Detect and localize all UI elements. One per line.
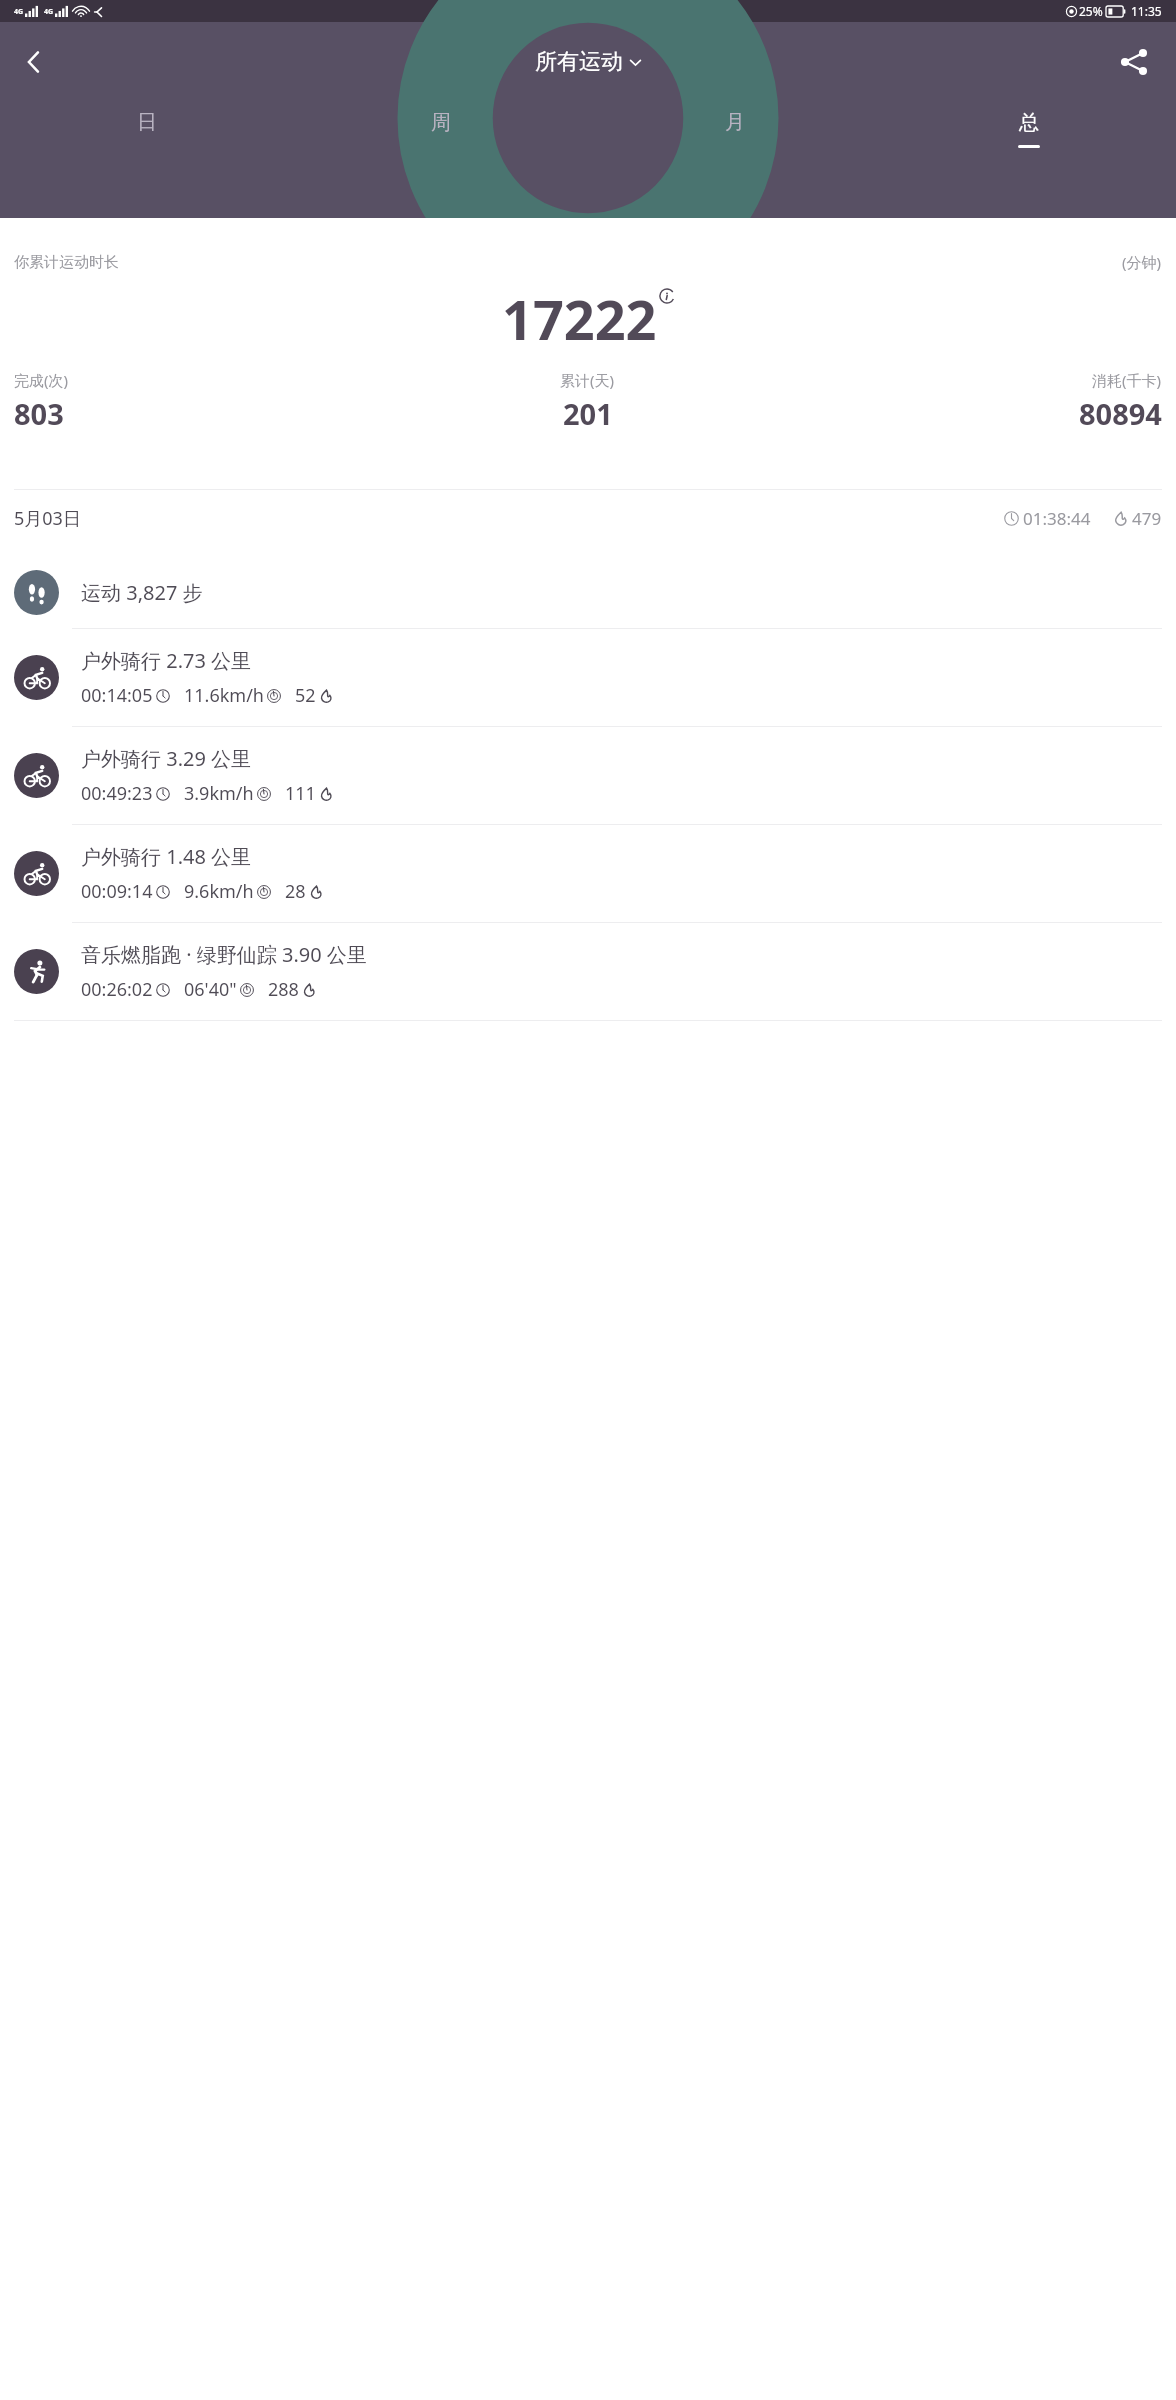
button[interactable]: 户外骑行 2.73 公里: [0, 629, 1176, 726]
button[interactable]: Back: [6, 34, 62, 90]
button[interactable]: 所有运动: [525, 42, 652, 82]
staticText: 00:49:23: [81, 781, 153, 806]
staticText: 288: [268, 977, 299, 1002]
staticText: 音乐燃脂跑 · 绿野仙踪 3.90 公里: [81, 941, 367, 968]
staticText: (分钟): [1122, 252, 1162, 272]
staticText: 日: [137, 110, 157, 135]
button[interactable]: 累计(天): [396, 370, 779, 433]
staticText: 80894: [1079, 394, 1162, 433]
button[interactable]: 周: [294, 102, 588, 162]
button[interactable]: 音乐燃脂跑 · 绿野仙踪 3.90 公里: [0, 923, 1176, 1020]
staticText: 所有运动: [535, 48, 623, 76]
staticText: 4G: [14, 7, 24, 17]
staticText: 11.6km/h: [184, 683, 264, 708]
staticText: 11:35: [1131, 3, 1162, 19]
staticText: 17222: [502, 282, 657, 356]
button[interactable]: 户外骑行 1.48 公里: [0, 825, 1176, 922]
staticText: 消耗(千卡): [1092, 370, 1162, 390]
button[interactable]: 户外骑行 3.29 公里: [0, 727, 1176, 824]
staticText: 户外骑行 1.48 公里: [81, 843, 252, 870]
staticText: 201: [563, 394, 613, 433]
staticText: 户外骑行 3.29 公里: [81, 745, 252, 772]
staticText: 111: [285, 781, 316, 806]
staticText: 01:38:44: [1023, 507, 1091, 530]
staticText: 户外骑行 2.73 公里: [81, 647, 252, 674]
button[interactable]: 完成(次): [14, 370, 396, 433]
staticText: 25%: [1079, 3, 1103, 19]
staticText: 月: [725, 110, 745, 135]
staticText: 运动 3,827 步: [81, 579, 203, 606]
button[interactable]: 消耗(千卡): [779, 370, 1162, 433]
button[interactable]: 月: [588, 102, 882, 162]
staticText: 5月03日: [14, 506, 81, 531]
staticText: 你累计运动时长: [14, 253, 119, 272]
staticText: 累计(天): [560, 370, 615, 390]
staticText: 00:14:05: [81, 683, 153, 708]
staticText: 完成(次): [14, 370, 69, 390]
staticText: 00:26:02: [81, 977, 153, 1002]
staticText: 周: [431, 110, 451, 135]
button[interactable]: 日: [0, 102, 294, 162]
staticText: 06'40": [184, 977, 237, 1002]
button[interactable]: Share: [1106, 34, 1162, 90]
staticText: 9.6km/h: [184, 879, 254, 904]
staticText: 52: [295, 683, 316, 708]
staticText: 803: [14, 394, 64, 433]
staticText: 3.9km/h: [184, 781, 254, 806]
staticText: 28: [285, 879, 306, 904]
staticText: 4G: [44, 7, 54, 17]
staticText: 总: [1019, 110, 1039, 135]
button[interactable]: 总: [882, 102, 1176, 162]
staticText: 00:09:14: [81, 879, 153, 904]
staticText: 479: [1132, 507, 1162, 530]
button[interactable]: 运动 3,827 步: [0, 557, 1176, 628]
